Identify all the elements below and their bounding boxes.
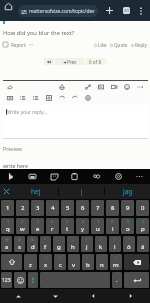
button[interactable]: u	[91, 218, 104, 234]
button[interactable]: q	[1, 218, 14, 234]
button[interactable]: Format	[107, 81, 120, 92]
button[interactable]: Format	[29, 92, 42, 103]
button[interactable]: Keyboard tool	[66, 169, 82, 184]
button[interactable]: 1	[1, 200, 14, 216]
button[interactable]: Format	[68, 92, 81, 103]
button[interactable]: Keyboard tool	[24, 169, 40, 184]
button[interactable]: Format	[133, 81, 146, 92]
button[interactable]: c	[54, 254, 66, 270]
button[interactable]: k	[95, 236, 107, 252]
button[interactable]: Key	[14, 272, 26, 288]
button[interactable]: g	[53, 236, 65, 252]
button[interactable]: hej	[13, 184, 58, 199]
button[interactable]: Keyboard tool	[46, 169, 62, 184]
button[interactable]: Format	[55, 92, 68, 103]
button[interactable]: m	[110, 254, 122, 270]
button[interactable]: n	[96, 254, 108, 270]
button[interactable]: x	[39, 254, 52, 270]
button[interactable]	[44, 58, 54, 65]
button[interactable]: w	[16, 218, 29, 234]
button[interactable]: 6 of 8	[85, 58, 106, 65]
button[interactable]: mattersofsize.com/topic/dev	[18, 5, 98, 17]
button[interactable]: Format	[16, 92, 29, 103]
button[interactable]: o	[121, 218, 134, 234]
button[interactable]: s	[14, 236, 25, 252]
button[interactable]: More	[29, 43, 33, 46]
button[interactable]: Key	[124, 272, 149, 288]
button[interactable]: Tabs	[120, 4, 133, 17]
staticText: -	[30, 255, 32, 261]
button[interactable]: Keyboard tool	[2, 169, 18, 184]
button[interactable]: Report	[11, 42, 26, 48]
button[interactable]: 9	[121, 200, 134, 216]
button[interactable]: ö	[123, 236, 135, 252]
button[interactable]: j	[81, 236, 93, 252]
button[interactable]: ä	[137, 236, 149, 252]
button[interactable]: t	[61, 218, 74, 234]
button[interactable]: Format	[94, 81, 107, 92]
button[interactable]: |	[59, 184, 104, 199]
button[interactable]: Key	[28, 272, 38, 288]
button[interactable]: .	[112, 272, 122, 288]
button[interactable]: 0	[136, 200, 149, 216]
button[interactable]: jag	[105, 184, 150, 199]
button[interactable]: Preview	[3, 145, 22, 152]
button[interactable]: Keyboard tool	[110, 169, 126, 184]
button[interactable]: 5	[61, 200, 74, 216]
staticText: q	[6, 225, 10, 233]
button[interactable]: z	[24, 254, 37, 270]
button[interactable]: Format	[3, 92, 16, 103]
button[interactable]: Format	[81, 81, 94, 92]
button[interactable]: p	[136, 218, 149, 234]
button[interactable]: i	[106, 218, 119, 234]
button[interactable]: h	[67, 236, 79, 252]
button[interactable]: y	[76, 218, 89, 234]
button[interactable]: Move cursor down	[37, 289, 74, 303]
button[interactable]: b	[82, 254, 94, 270]
button[interactable]: d	[27, 236, 38, 252]
button[interactable]: 6	[76, 200, 89, 216]
button[interactable]: Key	[124, 254, 149, 270]
button[interactable]: Format	[3, 81, 16, 92]
button[interactable]: e	[31, 218, 44, 234]
button[interactable]: Select post	[3, 42, 8, 47]
button[interactable]: r	[46, 218, 59, 234]
button[interactable]: Prev	[55, 58, 84, 65]
button[interactable]: Format	[81, 92, 94, 103]
button[interactable]: Move cursor up	[0, 289, 37, 303]
button[interactable]: Home	[2, 0, 15, 13]
button[interactable]: 123	[1, 272, 12, 288]
button[interactable]: Close suggestions	[0, 184, 13, 199]
staticText: &	[31, 237, 35, 243]
button[interactable]: New tab	[103, 4, 116, 17]
button[interactable]: 2	[16, 200, 29, 216]
button[interactable]: 4	[46, 200, 59, 216]
button[interactable]: Format	[55, 81, 68, 92]
button[interactable]: Key	[1, 254, 22, 270]
button[interactable]: 8	[106, 200, 119, 216]
staticText: Like	[98, 42, 107, 48]
button[interactable]: l	[109, 236, 121, 252]
button[interactable]: Keyboard tool	[88, 169, 104, 184]
button[interactable]: 7	[91, 200, 104, 216]
button[interactable]: Format	[120, 81, 133, 92]
button[interactable]: a	[1, 236, 12, 252]
button[interactable]: Quote	[110, 42, 128, 48]
button[interactable]: Like	[94, 42, 107, 48]
button[interactable]: Move cursor left	[74, 289, 112, 303]
button[interactable]: Move cursor right	[112, 289, 150, 303]
button[interactable]: More options	[135, 5, 146, 16]
button[interactable]: 3	[31, 200, 44, 216]
button[interactable]: Keyboard tool	[131, 169, 147, 184]
staticText: Prev	[67, 59, 77, 65]
button[interactable]: Reply	[131, 42, 147, 48]
button[interactable]: f	[40, 236, 51, 252]
button[interactable]: Format	[42, 92, 55, 103]
staticText: s	[18, 243, 21, 251]
button[interactable]: v	[68, 254, 80, 270]
